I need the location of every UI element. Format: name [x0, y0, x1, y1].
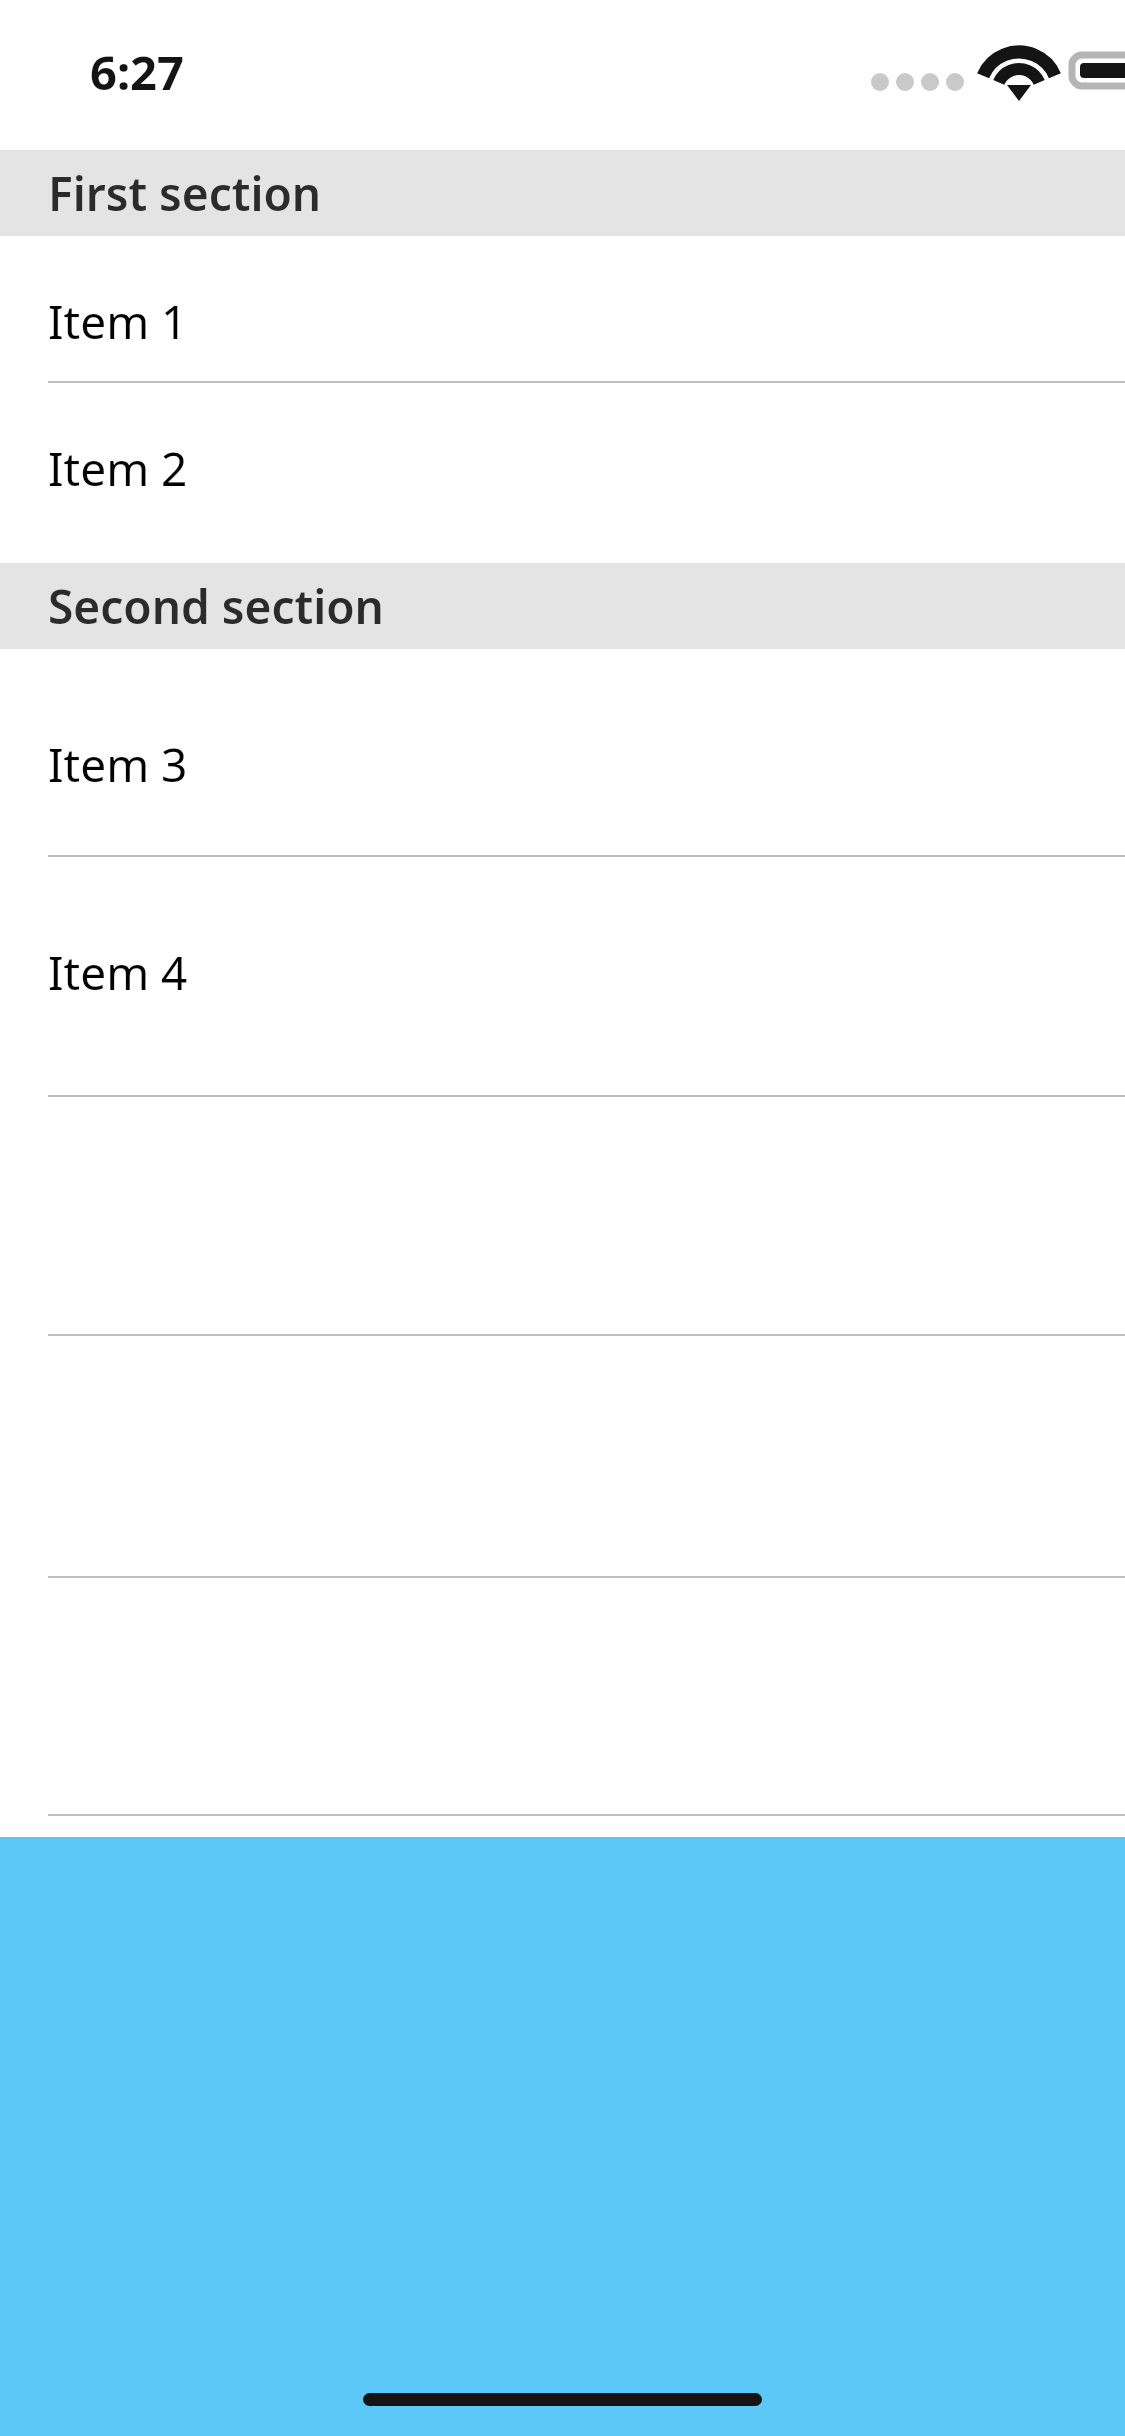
staticText: First section [48, 162, 322, 225]
other: Status icons [862, 44, 1107, 104]
staticText: Item 2 [48, 437, 188, 500]
staticText: 6:27 [90, 40, 184, 104]
button[interactable] [0, 1336, 1125, 1578]
button[interactable] [0, 1578, 1125, 1816]
staticText: Second section [48, 575, 384, 638]
button[interactable]: Item 1 [0, 236, 1125, 383]
button[interactable]: First section [0, 150, 1125, 236]
button[interactable]: Second section [0, 563, 1125, 649]
button[interactable]: Item 3 [0, 649, 1125, 857]
staticText: Item 3 [48, 733, 188, 796]
staticText: Item 4 [48, 941, 188, 1004]
button[interactable]: Item 4 [0, 857, 1125, 1097]
staticText: Item 1 [48, 290, 188, 353]
button[interactable]: Item 2 [0, 383, 1125, 563]
button[interactable] [0, 1097, 1125, 1336]
